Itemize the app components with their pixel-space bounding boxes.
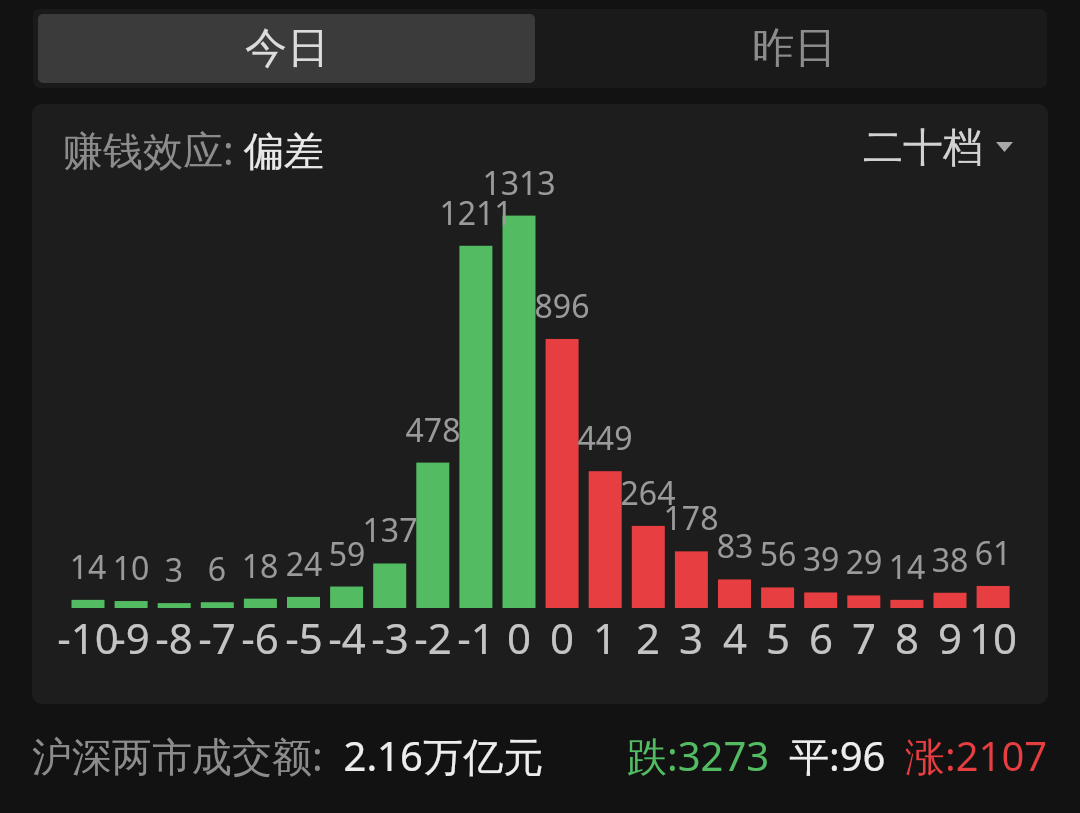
- staticText: 59: [287, 532, 407, 576]
- staticText: 0: [502, 609, 622, 666]
- staticText: 29: [804, 540, 924, 584]
- staticText: 24: [244, 542, 364, 586]
- staticText: -6: [200, 609, 320, 666]
- staticText: 1211: [416, 191, 536, 235]
- staticText: 896: [502, 284, 622, 328]
- staticText: 264: [588, 471, 708, 515]
- staticText: 3: [114, 548, 234, 592]
- staticText: 9: [890, 609, 1010, 666]
- staticText: 449: [545, 416, 665, 460]
- staticText: 5: [718, 609, 838, 666]
- staticText: 昨日: [752, 22, 836, 75]
- staticText: 4: [675, 609, 795, 666]
- staticText: 3: [631, 609, 751, 666]
- staticText: 沪深两市成交额: 2.16万亿元: [32, 728, 543, 783]
- staticText: 14: [28, 545, 148, 589]
- staticText: -8: [114, 609, 234, 666]
- staticText: 18: [200, 544, 320, 588]
- staticText: 38: [890, 538, 1010, 582]
- staticText: -5: [244, 609, 364, 666]
- staticText: 8: [847, 609, 967, 666]
- staticText: -1: [416, 609, 536, 666]
- staticText: 39: [761, 537, 881, 581]
- staticText: 56: [718, 532, 838, 576]
- staticText: 14: [847, 545, 967, 589]
- staticText: 83: [675, 524, 795, 568]
- staticText: -7: [157, 609, 277, 666]
- staticText: 跌:3273: [627, 728, 770, 783]
- staticText: 今日: [245, 22, 329, 75]
- staticText: 赚钱效应: 偏差: [63, 122, 325, 177]
- staticText: 0: [459, 609, 579, 666]
- staticText: -3: [330, 609, 450, 666]
- staticText: -4: [287, 609, 407, 666]
- staticText: -10: [28, 609, 148, 666]
- staticText: 478: [373, 408, 493, 452]
- staticText: 10: [71, 546, 191, 590]
- staticText: 平:96: [789, 728, 886, 783]
- staticText: -2: [373, 609, 493, 666]
- staticText: 涨:2107: [905, 728, 1048, 783]
- staticText: 137: [330, 508, 450, 552]
- staticText: 1313: [459, 161, 579, 205]
- button[interactable]: 今日: [38, 14, 535, 83]
- staticText: 61: [933, 531, 1053, 575]
- staticText: 10: [933, 609, 1053, 666]
- staticText: -9: [71, 609, 191, 666]
- staticText: 6: [157, 547, 277, 591]
- button[interactable]: 二十档: [863, 122, 1013, 172]
- staticText: 1: [545, 609, 665, 666]
- staticText: 178: [631, 496, 751, 540]
- other: Change range: [996, 142, 1013, 152]
- button[interactable]: 昨日: [540, 9, 1047, 88]
- staticText: 6: [761, 609, 881, 666]
- staticText: 二十档: [863, 122, 983, 172]
- staticText: 7: [804, 609, 924, 666]
- staticText: 2: [588, 609, 708, 666]
